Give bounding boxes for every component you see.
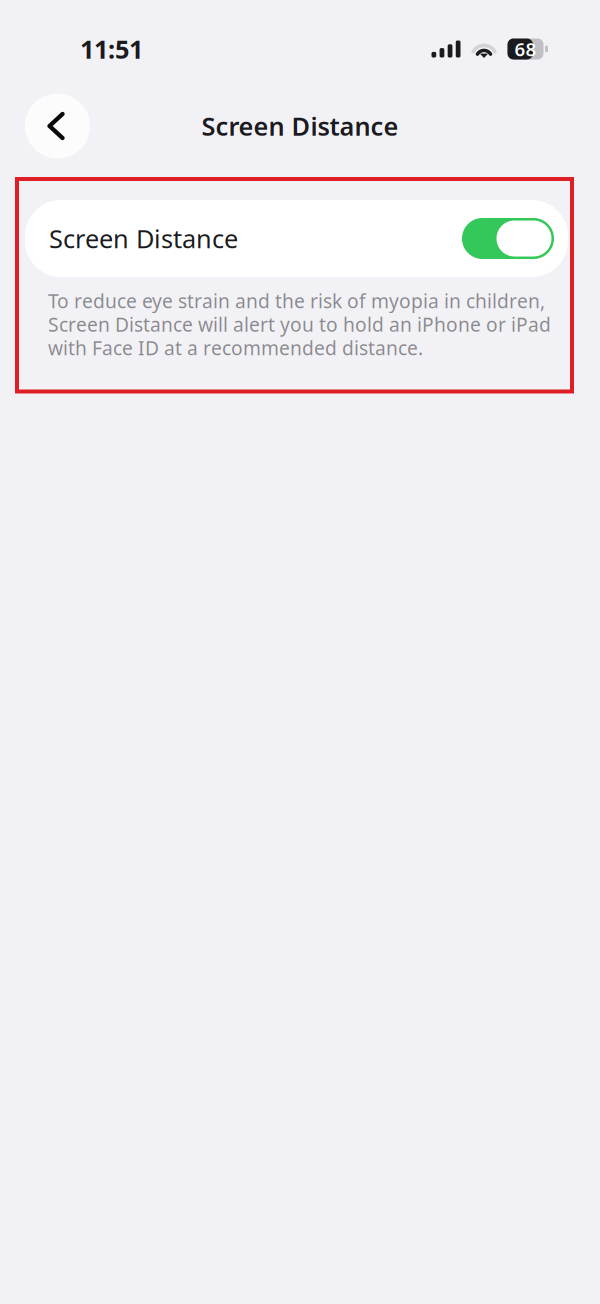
button[interactable]: Back <box>25 93 90 158</box>
button[interactable]: Screen Distance toggle <box>462 218 554 259</box>
staticText: 11:51 <box>80 32 143 66</box>
staticText: Screen Distance <box>201 109 398 143</box>
staticText: 68 <box>514 37 536 61</box>
button[interactable]: Screen Distance <box>25 200 568 277</box>
staticText: To reduce eye strain and the risk of myo… <box>48 288 551 360</box>
staticText: Screen Distance <box>49 222 238 255</box>
